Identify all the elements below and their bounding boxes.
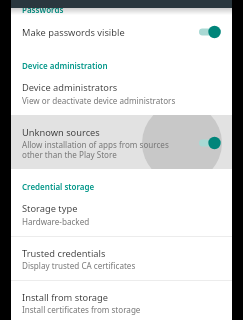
staticText: Credential storage xyxy=(22,181,95,192)
staticText: Install certificates from storage xyxy=(22,304,141,315)
button[interactable] xyxy=(11,115,232,169)
button[interactable] xyxy=(11,20,232,44)
staticText: Device administration xyxy=(22,60,108,71)
staticText: Storage type xyxy=(22,202,78,215)
staticText: Install from storage xyxy=(22,291,108,304)
staticText: Passwords xyxy=(22,4,64,15)
staticText: Display trusted CA certificates xyxy=(22,260,136,271)
button[interactable] xyxy=(11,197,232,236)
staticText: View or deactivate device administrators xyxy=(22,95,176,106)
staticText: Allow installation of apps from sources … xyxy=(22,139,169,160)
button[interactable]: Make passwords visible xyxy=(192,21,228,43)
button[interactable] xyxy=(11,76,232,110)
button[interactable] xyxy=(11,237,232,280)
button[interactable]: Unknown sources xyxy=(192,132,228,154)
staticText: Hardware-backed xyxy=(22,216,90,227)
staticText: Trusted credentials xyxy=(22,247,106,260)
staticText: Unknown sources xyxy=(22,126,100,139)
button[interactable] xyxy=(11,281,232,320)
staticText: Make passwords visible xyxy=(22,26,125,39)
staticText: Device administrators xyxy=(22,81,118,94)
